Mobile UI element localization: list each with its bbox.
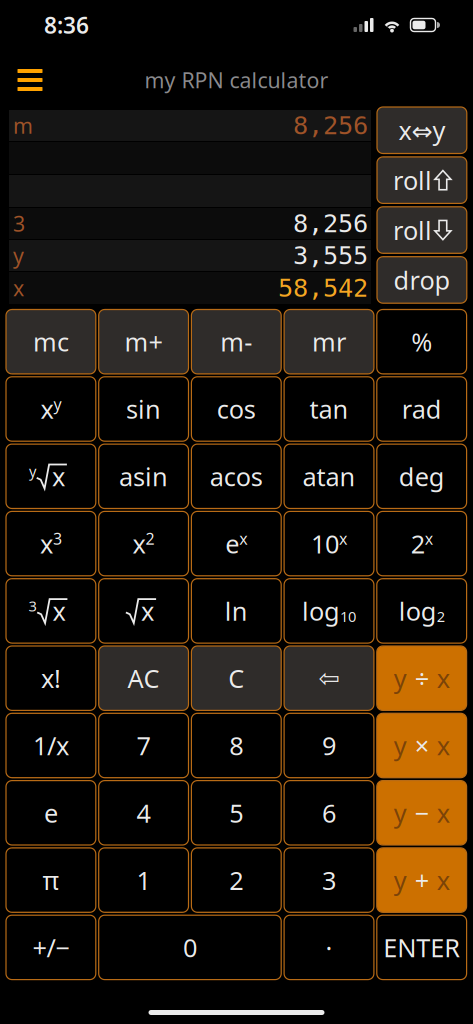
staticText: x [52,459,65,493]
button[interactable]: 10 [284,511,374,576]
button[interactable]: Menu [0,55,60,105]
button[interactable]: · [284,915,374,980]
button[interactable]: 7 [99,713,188,778]
button[interactable]: asin [99,444,188,508]
staticText: y [394,729,407,762]
staticText: x! [41,661,61,695]
button[interactable]: log [284,579,374,643]
staticText: tan [309,392,348,426]
button[interactable]: % [377,309,467,374]
button[interactable]: y [377,713,467,778]
staticText: π [42,863,59,897]
staticText: ln [225,594,248,628]
staticText: 2 [229,863,243,897]
staticText: x [437,796,450,830]
button[interactable]: x [6,511,96,576]
button[interactable]: acos [191,444,281,508]
staticText: 2 [437,606,445,626]
button[interactable]: x [99,579,188,643]
button[interactable]: mc [6,309,96,374]
staticText: 10 [311,527,339,560]
staticText: x [141,594,154,628]
button[interactable]: sin [99,377,188,441]
staticText: 5 [229,796,243,830]
button[interactable]: ln [191,579,281,643]
staticText: x [425,528,433,549]
button[interactable]: cos [191,377,281,441]
button[interactable]: 9 [284,713,374,778]
staticText: x [40,392,53,426]
button[interactable]: 3 [284,848,374,912]
button[interactable]: 2 [377,511,467,576]
staticText: log [302,594,340,628]
staticText: rad [402,392,442,426]
button[interactable]: x⇔y [377,107,467,153]
staticText: x [133,527,146,560]
staticText: x [437,661,450,695]
button[interactable]: tan [284,377,374,441]
button[interactable]: y [377,848,467,912]
button[interactable]: π [6,848,96,912]
button[interactable]: m+ [99,309,188,374]
button[interactable]: y [6,444,96,508]
button[interactable]: ENTER [377,915,467,980]
staticText: +/− [32,931,69,964]
button[interactable]: roll [377,157,467,203]
button[interactable]: 5 [191,781,281,845]
button[interactable]: 2 [191,848,281,912]
staticText: · [325,931,332,964]
staticText: log [399,594,437,628]
staticText: m [13,111,33,140]
button[interactable]: AC [99,646,188,710]
staticText: 3 [322,863,336,897]
staticText: e [44,796,58,830]
button[interactable]: x! [6,646,96,710]
button[interactable]: 8 [191,713,281,778]
button[interactable]: log [377,579,467,643]
button[interactable]: 3 [6,579,96,643]
staticText: x [437,863,450,897]
button[interactable]: e [6,781,96,845]
button[interactable]: x [6,377,96,441]
button[interactable]: m- [191,309,281,374]
button[interactable]: 1/x [6,713,96,778]
button[interactable]: e [191,511,281,576]
staticText: sin [126,392,161,426]
staticText: 3 [13,209,25,238]
staticText: 0 [183,931,197,964]
staticText: 2 [411,527,425,560]
staticText: 1/x [33,729,69,762]
staticText: x [40,527,53,560]
staticText: x [339,528,347,549]
button[interactable]: deg [377,444,467,508]
staticText: 6 [322,796,336,830]
button[interactable]: roll [377,207,467,253]
staticText: + [415,863,429,897]
staticText: y [53,393,61,415]
button[interactable]: y [377,781,467,845]
staticText: cos [217,392,256,426]
button[interactable]: C [191,646,281,710]
button[interactable]: atan [284,444,374,508]
button[interactable]: mr [284,309,374,374]
button[interactable]: 1 [99,848,188,912]
staticText: roll [393,213,432,247]
button[interactable]: +/− [6,915,96,980]
staticText: x [52,594,65,628]
staticText: m+ [125,325,163,358]
staticText: mr [312,325,346,358]
staticText: 2 [146,528,155,549]
button[interactable]: y [377,646,467,710]
staticText: 3 [53,528,62,549]
staticText: m- [220,325,252,358]
staticText: y [394,863,407,897]
staticText: 10 [340,606,356,626]
button[interactable]: x [99,511,188,576]
button[interactable]: 4 [99,781,188,845]
button[interactable]: rad [377,377,467,441]
button[interactable]: drop [377,257,467,303]
button[interactable]: ⇦ [284,646,374,710]
staticText: 8,256 [293,111,368,140]
button[interactable]: 6 [284,781,374,845]
button[interactable]: 0 [99,915,281,980]
